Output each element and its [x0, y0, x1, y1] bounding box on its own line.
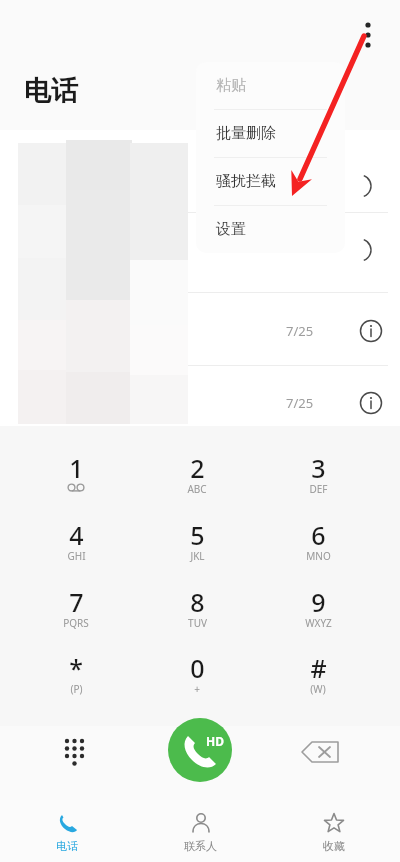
button[interactable]: 5 — [157, 518, 237, 574]
staticText: 批量删除 — [216, 124, 276, 143]
staticText: 4 — [69, 518, 84, 552]
button[interactable]: 联系人 — [134, 800, 267, 862]
button[interactable]: Call details — [356, 316, 386, 346]
staticText: 电话 — [24, 74, 78, 108]
staticText: (W) — [310, 682, 326, 696]
button[interactable]: More options — [352, 14, 384, 46]
button[interactable]: 收藏 — [267, 800, 400, 862]
staticText: * — [69, 651, 83, 685]
staticText: 5 — [190, 518, 205, 552]
staticText: ABC — [187, 482, 207, 496]
button[interactable]: # — [278, 651, 358, 707]
button[interactable]: * — [36, 651, 116, 707]
staticText: TUV — [188, 616, 207, 630]
button[interactable]: 1 — [36, 451, 116, 507]
staticText: 3 — [311, 451, 326, 485]
staticText: 7/25 — [286, 394, 314, 412]
staticText: 0 — [190, 651, 205, 685]
staticText: 7/25 — [286, 322, 314, 340]
button[interactable]: 6 — [278, 518, 358, 574]
button[interactable]: 设置 — [196, 206, 345, 253]
staticText: 7 — [69, 585, 84, 619]
button[interactable]: 0 — [157, 651, 237, 707]
button[interactable]: 4 — [36, 518, 116, 574]
staticText: 粘贴 — [216, 76, 246, 95]
button[interactable]: 8 — [157, 585, 237, 641]
button[interactable]: 骚扰拦截 — [196, 158, 345, 205]
staticText: 设置 — [216, 220, 246, 239]
staticText: 1 — [69, 451, 84, 485]
staticText: MNO — [306, 549, 331, 563]
button[interactable]: 粘贴 — [196, 62, 345, 109]
staticText: 2 — [190, 451, 205, 485]
staticText: # — [310, 651, 327, 685]
staticText: WXYZ — [305, 616, 332, 630]
staticText: 骚扰拦截 — [216, 172, 276, 191]
staticText: + — [194, 682, 200, 696]
button[interactable]: Call — [168, 718, 232, 782]
button[interactable]: 电话 — [0, 800, 134, 862]
staticText: HD — [206, 733, 224, 749]
staticText: 电话 — [56, 839, 78, 853]
button[interactable]: 批量删除 — [196, 110, 345, 157]
button[interactable]: 3 — [278, 451, 358, 507]
staticText: 收藏 — [323, 839, 345, 853]
staticText: 联系人 — [184, 839, 217, 853]
button[interactable]: 7 — [36, 585, 116, 641]
staticText: DEF — [309, 482, 328, 496]
button[interactable]: Call details — [356, 388, 386, 418]
staticText: PQRS — [63, 616, 89, 630]
staticText: JKL — [190, 549, 205, 563]
button[interactable]: 9 — [278, 585, 358, 641]
staticText: GHI — [67, 549, 86, 563]
button[interactable]: Delete — [296, 728, 344, 776]
button[interactable]: Hide keypad — [52, 726, 100, 774]
staticText: 6 — [311, 518, 326, 552]
button[interactable]: 2 — [157, 451, 237, 507]
staticText: 8 — [190, 585, 205, 619]
staticText: (P) — [70, 682, 83, 696]
staticText: 9 — [311, 585, 326, 619]
